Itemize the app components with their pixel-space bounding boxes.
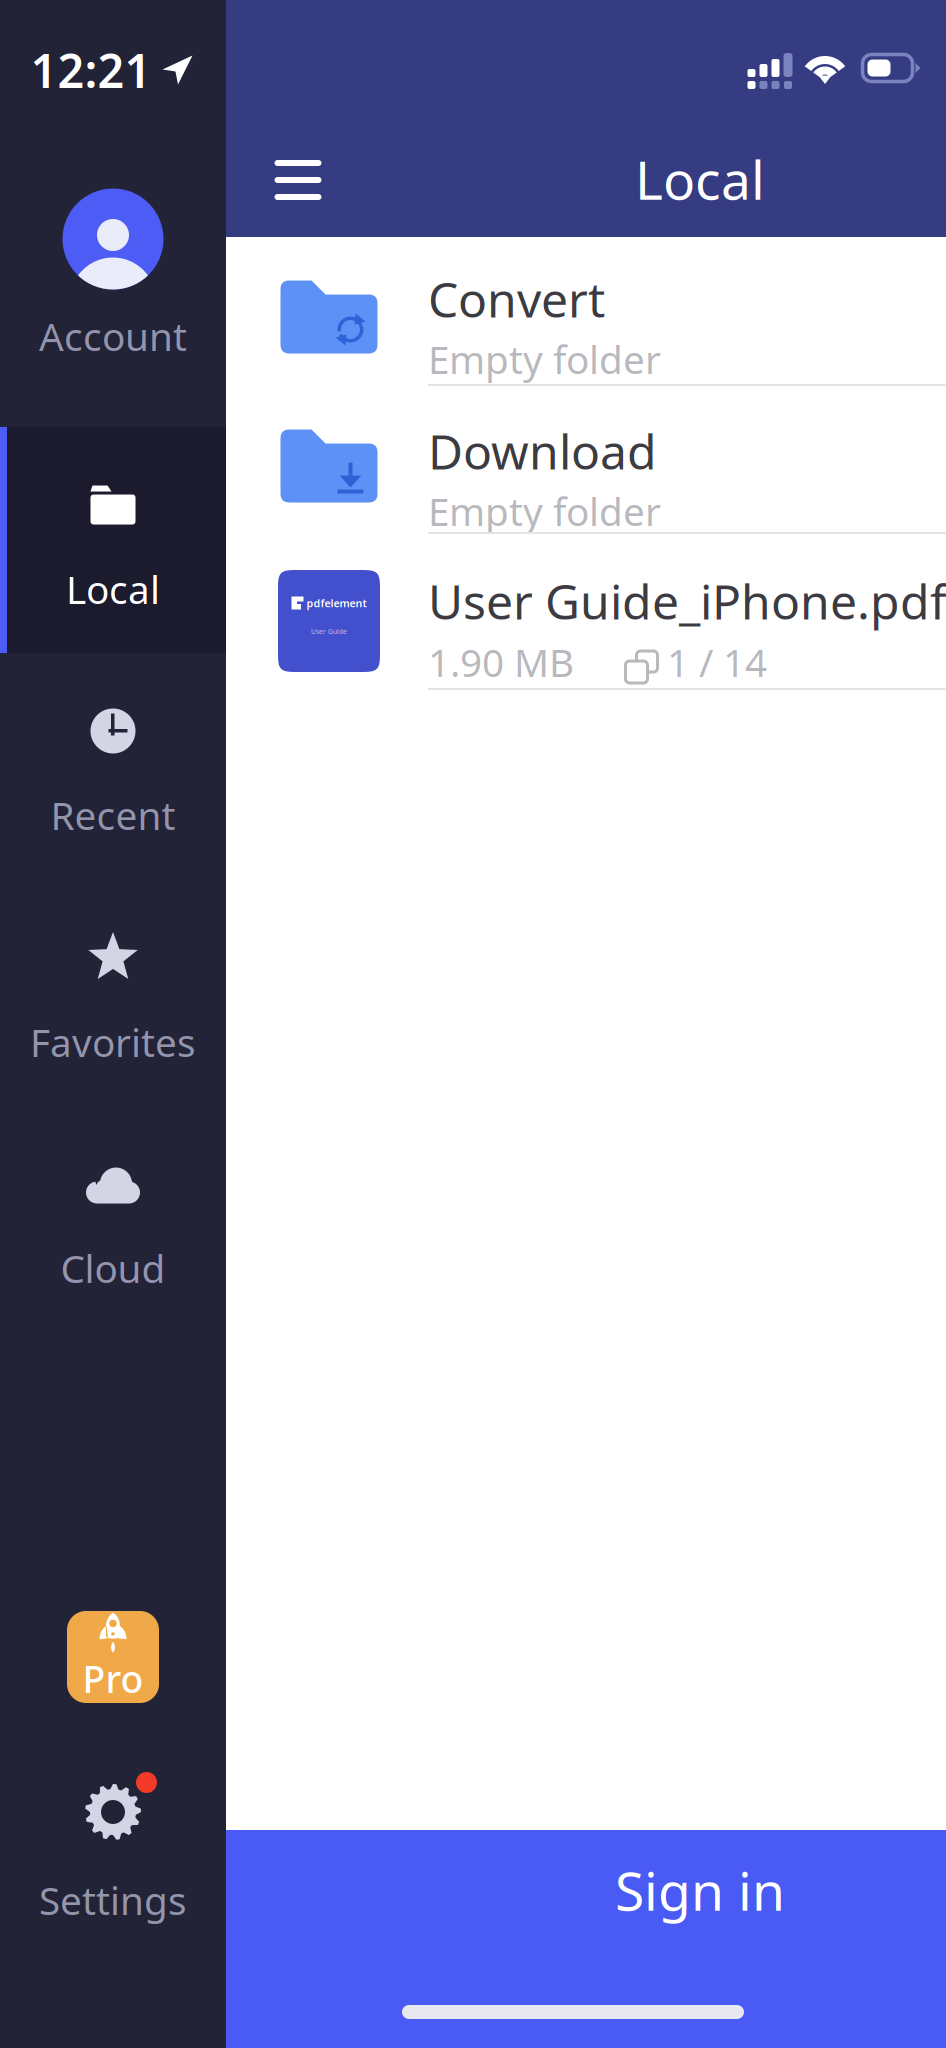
- staticText: 1.90 MB: [428, 636, 574, 688]
- button[interactable]: Settings: [0, 1770, 226, 1950]
- staticText: 1 / 14: [667, 636, 767, 688]
- button[interactable]: Menu: [254, 136, 342, 224]
- staticText: Download: [428, 419, 657, 483]
- staticText: Recent: [50, 789, 175, 841]
- staticText: Account: [39, 310, 187, 362]
- staticText: Local: [66, 563, 160, 615]
- staticText: Convert: [428, 267, 605, 331]
- button[interactable]: Recent: [0, 653, 226, 879]
- button[interactable]: Account: [0, 188, 226, 388]
- staticText: Cloud: [60, 1242, 165, 1294]
- button[interactable]: Sign in: [226, 1830, 946, 2048]
- staticText: User Guide_iPhone.pdf: [428, 569, 946, 633]
- button[interactable]: Favorites: [0, 880, 226, 1106]
- staticText: Sign in: [615, 1855, 785, 1925]
- staticText: Empty folder: [428, 485, 661, 537]
- staticText: Favorites: [30, 1016, 196, 1068]
- button[interactable]: pdfelement: [226, 534, 946, 690]
- button[interactable]: Local: [0, 427, 226, 653]
- staticText: pdfelement: [306, 596, 366, 610]
- staticText: Empty folder: [428, 333, 661, 385]
- button[interactable]: Pro: [67, 1611, 159, 1703]
- button[interactable]: Download: [226, 386, 946, 534]
- button[interactable]: Cloud: [0, 1106, 226, 1332]
- staticText: Settings: [39, 1874, 187, 1926]
- staticText: Local: [635, 144, 765, 214]
- staticText: Pro: [82, 1654, 143, 1703]
- staticText: 12:21: [30, 39, 151, 101]
- staticText: User Guide: [311, 627, 347, 636]
- button[interactable]: Convert: [226, 237, 946, 386]
